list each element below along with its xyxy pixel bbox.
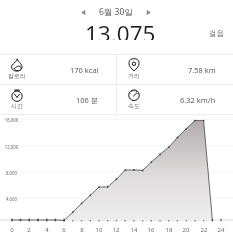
staticText: 속도 [121, 102, 147, 110]
staticText: 6 [57, 226, 71, 234]
staticText: 8,000 [4, 170, 19, 176]
staticText: 6.32 km/h [180, 95, 216, 105]
button[interactable]: Previous day [76, 5, 90, 19]
staticText: 170 kcal [70, 65, 99, 75]
button[interactable]: 거리 [117, 55, 233, 85]
staticText: 4 [40, 226, 54, 234]
staticText: 6월 30일 [99, 6, 133, 18]
button[interactable]: 6월 30일 [90, 4, 141, 20]
staticText: 13,075 [85, 18, 156, 40]
button[interactable]: Next day [141, 5, 155, 19]
staticText: 16 [144, 226, 158, 234]
staticText: 12,000 [4, 144, 19, 150]
staticText: 14 [127, 226, 141, 234]
button[interactable]: 시간 [0, 85, 117, 115]
staticText: 4,000 [4, 196, 19, 202]
staticText: 칼로리 [4, 72, 30, 80]
staticText: 20 [179, 226, 193, 234]
staticText: 24 [214, 226, 228, 234]
staticText: 걸음 [209, 29, 224, 38]
staticText: 7.58 km [188, 65, 216, 75]
staticText: 18 [162, 226, 176, 234]
staticText: 16,000 [4, 117, 19, 123]
staticText: 8 [75, 226, 89, 234]
staticText: 2 [22, 226, 36, 234]
staticText: 시간 [4, 102, 30, 110]
staticText: 106 분 [76, 95, 99, 105]
staticText: 0 [5, 226, 19, 234]
button[interactable]: 속도 [117, 85, 233, 115]
staticText: 22 [197, 226, 211, 234]
staticText: 12 [109, 226, 123, 234]
staticText: 거리 [121, 72, 147, 80]
button[interactable]: 칼로리 [0, 55, 117, 85]
staticText: 10 [92, 226, 106, 234]
